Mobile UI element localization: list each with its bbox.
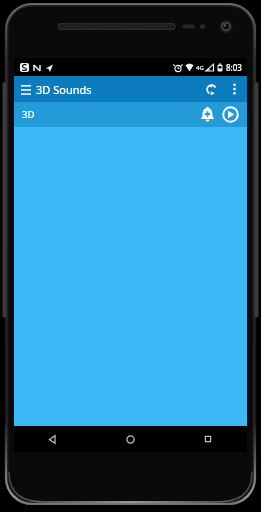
button[interactable]: More options: [223, 78, 245, 100]
staticText: 4G: [196, 64, 204, 72]
button[interactable]: Back: [14, 426, 91, 452]
button[interactable]: Home: [91, 426, 169, 452]
button[interactable]: Play: [219, 103, 242, 126]
button[interactable]: Open navigation drawer: [18, 81, 34, 97]
button[interactable]: Recent apps: [169, 426, 247, 452]
staticText: 3D Sounds: [36, 82, 92, 97]
staticText: 3D: [22, 108, 35, 121]
button[interactable]: Refresh: [199, 77, 223, 101]
staticText: 8:03: [226, 62, 242, 73]
button[interactable]: Add alarm: [196, 103, 219, 126]
button[interactable]: 3D: [14, 102, 247, 127]
